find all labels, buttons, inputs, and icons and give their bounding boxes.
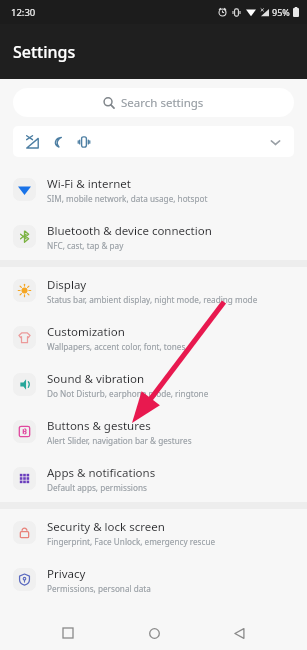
staticText: Settings [13, 41, 76, 63]
staticText: Display [47, 277, 87, 293]
button[interactable]: Recent apps [51, 616, 85, 650]
staticText: Alert Slider, navigation bar & gestures [47, 435, 192, 446]
other: Expand [267, 134, 283, 150]
button[interactable]: Home [137, 616, 171, 650]
button[interactable]: Security & lock screen [0, 509, 307, 556]
staticText: Apps & notifications [47, 465, 156, 481]
staticText: Fingerprint, Face Unlock, emergency resc… [47, 536, 216, 547]
other: Vibrate [76, 134, 92, 150]
button[interactable]: Back [222, 616, 256, 650]
staticText: Do Not Disturb, earphone mode, ringtone [47, 388, 209, 399]
staticText: Security & lock screen [47, 519, 165, 535]
button[interactable]: Customization [0, 314, 307, 361]
other: Do not disturb [50, 134, 66, 150]
staticText: SIM, mobile network, data usage, hotspot [47, 193, 208, 204]
button[interactable]: Display [0, 267, 307, 314]
staticText: 95% [272, 6, 290, 18]
button[interactable]: Airplane mode off [13, 126, 294, 157]
staticText: 12:30 [11, 6, 36, 19]
staticText: Default apps, permissions [47, 482, 147, 493]
staticText: Status bar, ambient display, night mode,… [47, 294, 258, 305]
staticText: Wallpapers, accent color, font, tones [47, 341, 186, 352]
button[interactable]: Apps & notifications [0, 455, 307, 502]
button[interactable]: Buttons & gestures [0, 408, 307, 455]
button[interactable]: Privacy [0, 556, 307, 603]
staticText: Sound & vibration [47, 371, 144, 387]
button[interactable]: Bluetooth & device connection [0, 213, 307, 260]
staticText: Privacy [47, 566, 86, 582]
button[interactable]: Sound & vibration [0, 361, 307, 408]
staticText: NFC, cast, tap & pay [47, 240, 124, 251]
staticText: Permissions, personal data [47, 583, 151, 594]
button[interactable]: Wi-Fi & internet [0, 166, 307, 213]
staticText: Customization [47, 324, 125, 340]
staticText: Bluetooth & device connection [47, 223, 212, 239]
staticText: Buttons & gestures [47, 418, 151, 434]
button[interactable]: Search settings [13, 88, 294, 117]
other: Airplane mode off [24, 134, 40, 150]
staticText: Wi-Fi & internet [47, 176, 131, 192]
staticText: Search settings [121, 95, 204, 111]
